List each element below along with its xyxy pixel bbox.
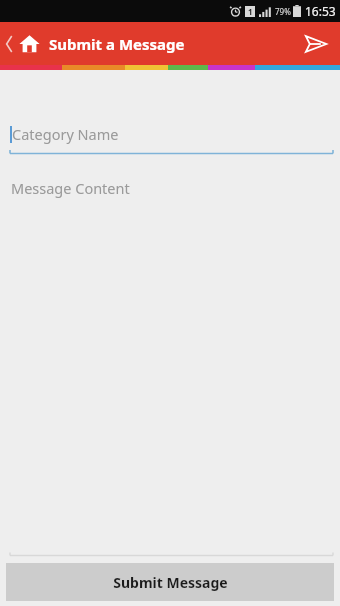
staticText: 16:53 (305, 3, 336, 19)
staticText: Submit Message (113, 573, 228, 592)
staticText: Message Content (11, 178, 130, 198)
staticText: Submit a Message (49, 34, 185, 54)
button[interactable]: Send (292, 22, 340, 65)
staticText: 1 (248, 6, 253, 17)
staticText: Category Name (12, 124, 119, 144)
button[interactable]: Navigate up, Home (0, 22, 43, 65)
button[interactable]: Submit Message (6, 563, 334, 601)
button[interactable]: Category Name (10, 116, 333, 152)
button[interactable]: Message Content (11, 174, 333, 554)
staticText: 79% (275, 6, 291, 17)
